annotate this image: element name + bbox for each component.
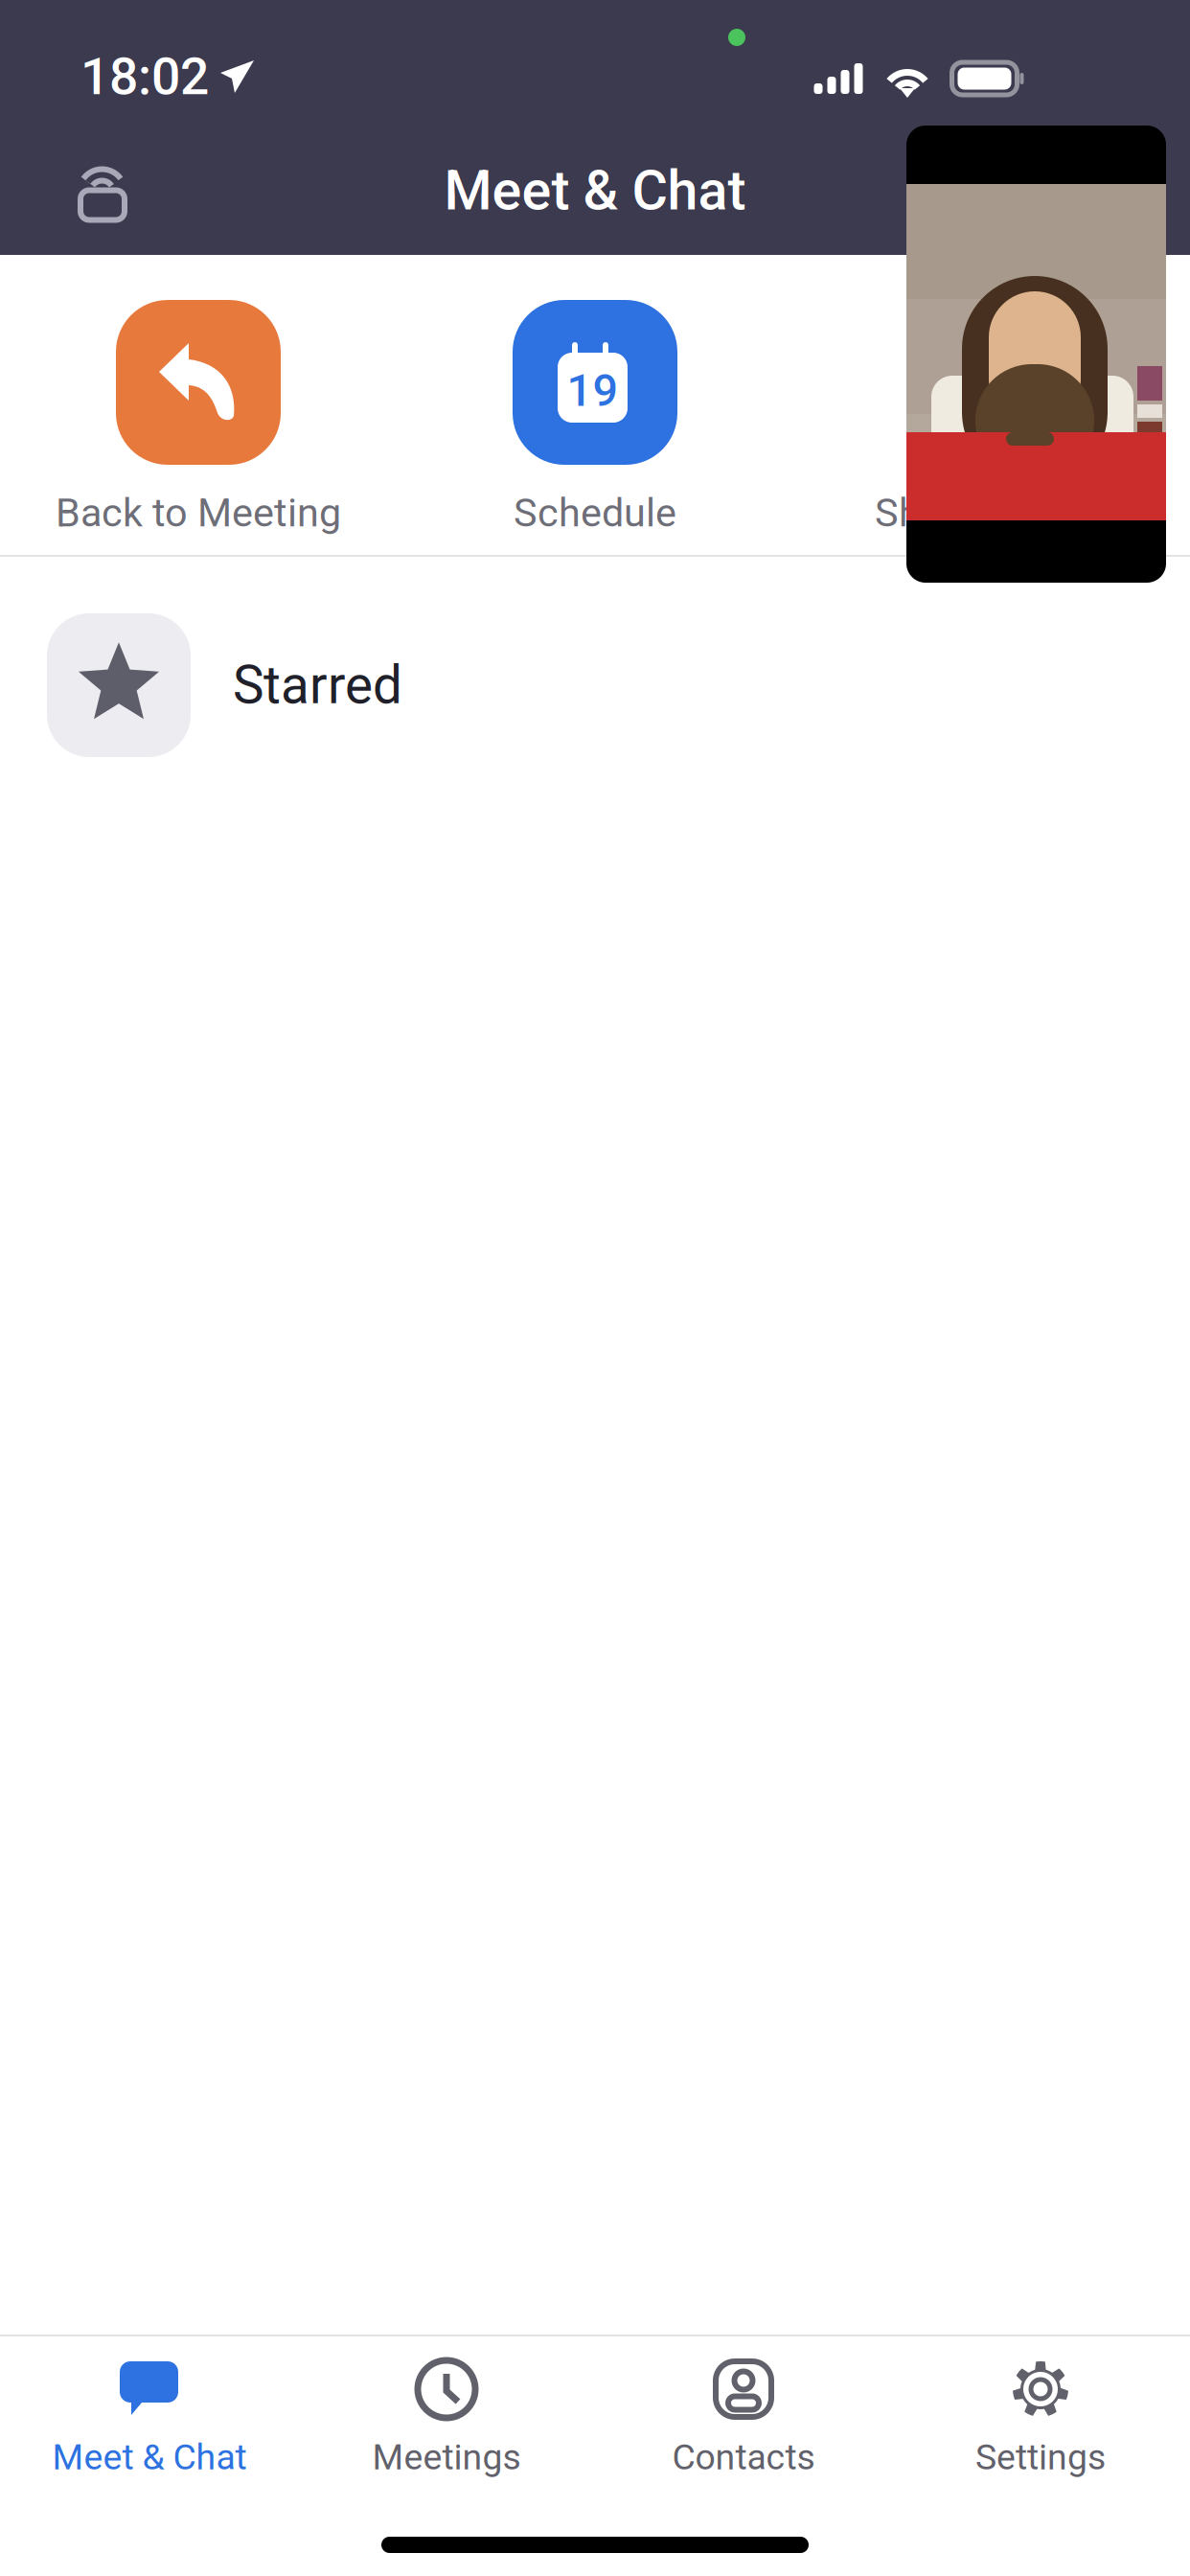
- staticText: 19: [567, 364, 618, 417]
- staticText: Meet & Chat: [52, 2436, 247, 2478]
- staticText: Meet & Chat: [444, 159, 746, 223]
- staticText: Contacts: [672, 2436, 815, 2478]
- staticText: Back to Meeting: [56, 490, 341, 536]
- button[interactable]: Settings: [892, 2336, 1189, 2495]
- button[interactable]: Share screen: [50, 138, 155, 243]
- button[interactable]: 19: [397, 300, 793, 536]
- staticText: Schedule: [514, 490, 676, 536]
- staticText: Starred: [233, 655, 402, 716]
- staticText: 18:02: [80, 47, 209, 107]
- button[interactable]: Share Screen: [793, 300, 1190, 536]
- staticText: Share Screen: [875, 490, 1109, 536]
- staticText: Settings: [975, 2436, 1106, 2478]
- button[interactable]: Contacts: [595, 2336, 892, 2495]
- button[interactable]: Starred: [0, 557, 1190, 811]
- button[interactable]: Back to Meeting: [0, 300, 397, 536]
- button[interactable]: Meet & Chat: [1, 2336, 298, 2495]
- staticText: Meetings: [372, 2436, 521, 2478]
- button[interactable]: Meetings: [298, 2336, 595, 2495]
